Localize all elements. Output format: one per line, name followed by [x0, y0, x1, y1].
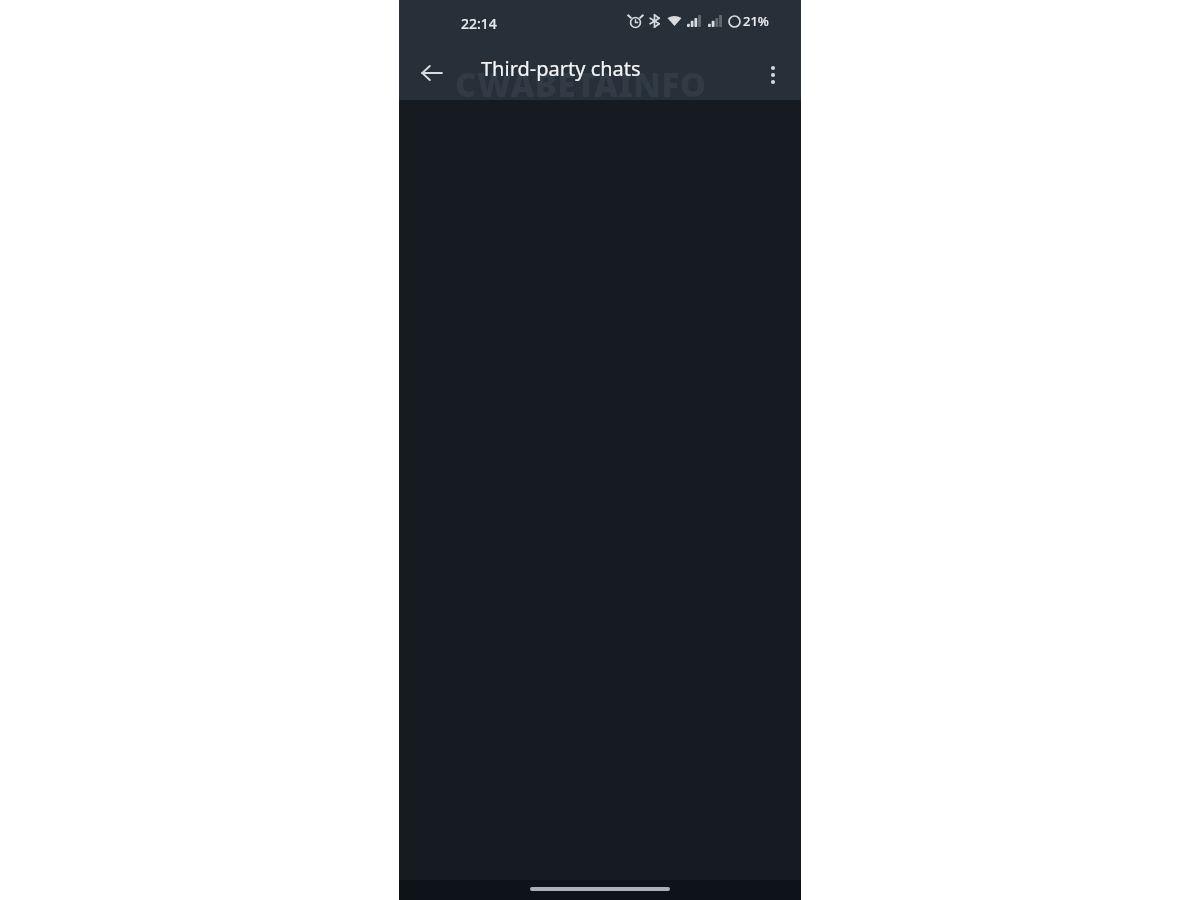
staticText: 21%: [743, 12, 769, 30]
staticText: Third-party chats: [481, 55, 641, 82]
button[interactable]: Back: [408, 49, 456, 97]
staticText: 22:14: [461, 14, 497, 33]
staticText: CWABETAINFO: [455, 62, 707, 100]
button[interactable]: More options: [751, 53, 795, 97]
